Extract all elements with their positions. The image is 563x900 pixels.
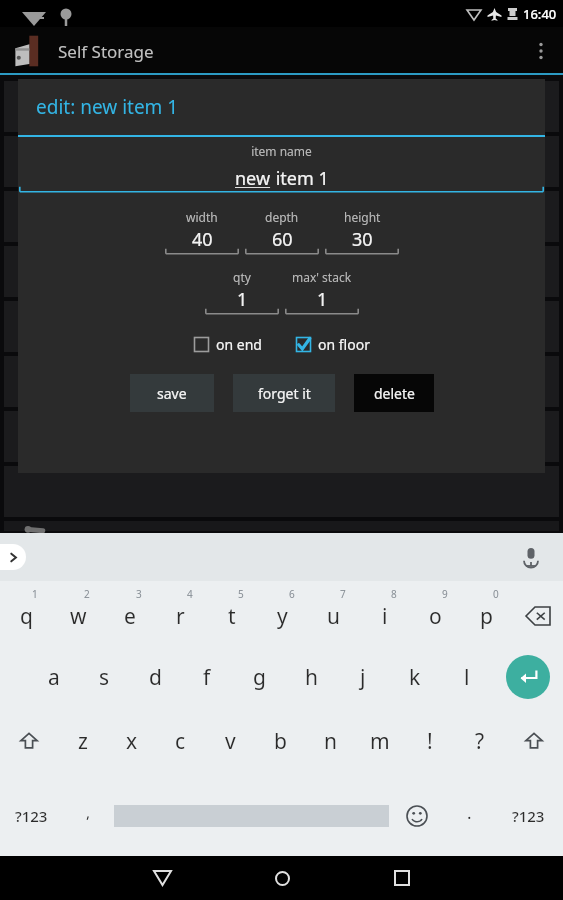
staticText: 30: [352, 227, 373, 252]
staticText: delete: [374, 384, 415, 403]
staticText: z: [78, 727, 88, 756]
button[interactable]: b: [255, 709, 305, 773]
staticText: l: [464, 663, 470, 692]
staticText: 1: [32, 587, 38, 601]
button[interactable]: s: [79, 645, 130, 709]
button[interactable]: q: [0, 581, 52, 645]
button[interactable]: Emoji: [389, 773, 445, 858]
button[interactable]: ?: [455, 709, 505, 773]
staticText: item 1: [271, 166, 329, 191]
button[interactable]: g: [233, 645, 285, 709]
staticText: p: [480, 602, 493, 631]
button[interactable]: y: [257, 581, 308, 645]
button[interactable]: 40: [165, 227, 239, 255]
button[interactable]: new: [19, 163, 544, 193]
button[interactable]: h: [285, 645, 337, 709]
staticText: g: [253, 663, 266, 692]
button[interactable]: ?123: [493, 773, 563, 858]
button[interactable]: on floor: [296, 335, 370, 354]
staticText: 8: [391, 587, 397, 601]
button[interactable]: Voice input: [517, 543, 545, 571]
staticText: v: [225, 727, 236, 756]
button[interactable]: z: [58, 709, 107, 773]
staticText: e: [124, 602, 136, 631]
staticText: w: [70, 602, 87, 631]
staticText: ?: [475, 727, 485, 756]
staticText: 60: [272, 227, 293, 252]
button[interactable]: Backspace: [512, 581, 563, 645]
button[interactable]: v: [205, 709, 255, 773]
button[interactable]: ?123: [0, 773, 62, 858]
button[interactable]: a: [28, 645, 79, 709]
button[interactable]: delete: [354, 374, 434, 412]
staticText: width: [186, 209, 218, 225]
button[interactable]: Period: [445, 773, 493, 858]
staticText: k: [409, 663, 421, 692]
button[interactable]: save: [130, 374, 214, 412]
button[interactable]: 1: [205, 287, 279, 315]
staticText: c: [175, 727, 186, 756]
staticText: ?123: [512, 806, 545, 826]
staticText: ,: [86, 802, 91, 822]
button[interactable]: Shift: [505, 709, 563, 773]
button[interactable]: j: [337, 645, 389, 709]
staticText: forget it: [258, 384, 311, 403]
staticText: u: [327, 602, 340, 631]
staticText: 3: [136, 587, 142, 601]
button[interactable]: forget it: [233, 374, 335, 412]
staticText: y: [277, 602, 288, 631]
staticText: h: [305, 663, 318, 692]
button[interactable]: t: [206, 581, 257, 645]
button[interactable]: d: [130, 645, 181, 709]
button[interactable]: i: [359, 581, 410, 645]
button[interactable]: m: [355, 709, 405, 773]
staticText: t: [228, 602, 236, 631]
button[interactable]: Back: [138, 856, 186, 900]
button[interactable]: o: [410, 581, 461, 645]
button[interactable]: e: [104, 581, 155, 645]
button[interactable]: p: [461, 581, 512, 645]
staticText: save: [157, 384, 187, 403]
button[interactable]: Home: [258, 856, 306, 900]
button[interactable]: 1: [285, 287, 359, 315]
staticText: 5: [238, 587, 244, 601]
staticText: depth: [265, 209, 299, 225]
button[interactable]: Space: [114, 787, 389, 844]
button[interactable]: n: [305, 709, 355, 773]
staticText: 40: [192, 227, 213, 252]
button[interactable]: u: [308, 581, 359, 645]
button[interactable]: Expand suggestions: [0, 544, 26, 570]
staticText: new: [235, 166, 271, 191]
button[interactable]: Comma: [62, 773, 114, 858]
button[interactable]: More options: [519, 27, 563, 75]
button[interactable]: 60: [245, 227, 319, 255]
staticText: on end: [216, 335, 262, 354]
staticText: 1: [237, 287, 248, 312]
staticText: d: [149, 663, 162, 692]
staticText: q: [20, 602, 33, 631]
staticText: b: [274, 727, 287, 756]
staticText: n: [324, 727, 337, 756]
button[interactable]: Shift: [0, 709, 58, 773]
button[interactable]: w: [52, 581, 104, 645]
staticText: on floor: [318, 335, 370, 354]
button[interactable]: on end: [194, 335, 262, 354]
staticText: s: [99, 663, 110, 692]
staticText: item name: [18, 143, 545, 159]
staticText: ?123: [15, 806, 48, 826]
staticText: edit: new item 1: [36, 94, 179, 120]
staticText: j: [360, 663, 366, 692]
button[interactable]: 30: [325, 227, 399, 255]
staticText: f: [203, 663, 211, 692]
staticText: 4: [187, 587, 193, 601]
button[interactable]: c: [156, 709, 205, 773]
staticText: !: [427, 727, 433, 756]
button[interactable]: !: [405, 709, 455, 773]
button[interactable]: r: [155, 581, 206, 645]
button[interactable]: f: [181, 645, 233, 709]
button[interactable]: Recents: [378, 856, 426, 900]
button[interactable]: l: [441, 645, 493, 709]
button[interactable]: x: [107, 709, 156, 773]
button[interactable]: k: [389, 645, 441, 709]
button[interactable]: Enter: [493, 645, 563, 709]
